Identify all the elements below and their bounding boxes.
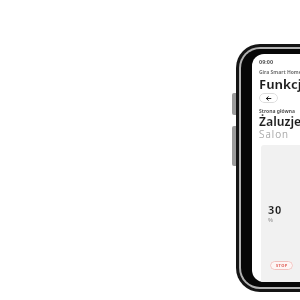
staticText: STOP [276,263,288,268]
staticText: Funkcje [259,75,300,93]
button[interactable]: 30 [261,145,300,282]
staticText: Salon [259,127,289,141]
staticText: 09:00 [259,58,274,65]
staticText: 30 [268,202,283,217]
staticText: % [268,216,273,224]
staticText: Gira Smart Home [259,69,300,76]
button[interactable]: Back [259,93,278,103]
button[interactable]: Strona główna [259,108,295,115]
staticText: Strona główna [259,108,295,115]
staticText: Żaluzje [259,113,300,129]
button[interactable]: STOP [270,261,293,270]
